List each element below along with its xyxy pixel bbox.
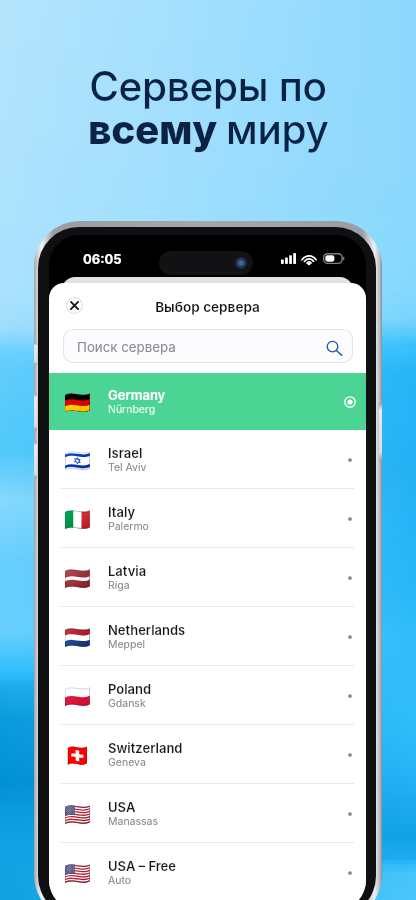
staticText: 🇱🇻: [64, 566, 91, 591]
staticText: USA: [108, 799, 136, 815]
staticText: 🇩🇪: [64, 390, 91, 415]
staticText: Israel: [108, 445, 143, 461]
button[interactable]: 🇨🇭: [49, 725, 366, 784]
staticText: Poland: [108, 681, 152, 697]
staticText: Italy: [108, 504, 136, 520]
staticText: Поиск сервера: [77, 339, 176, 355]
staticText: всему: [88, 105, 226, 154]
button[interactable]: 🇳🇱: [49, 607, 366, 666]
staticText: 06:05: [83, 251, 122, 267]
staticText: USA – Free: [108, 858, 176, 874]
button[interactable]: Close: [66, 297, 83, 314]
staticText: Серверы по: [0, 62, 416, 111]
staticText: 🇳🇱: [64, 625, 91, 650]
staticText: Auto: [108, 874, 132, 887]
staticText: Meppel: [108, 638, 146, 651]
button[interactable]: 🇺🇸: [49, 843, 366, 900]
button[interactable]: 🇵🇱: [49, 666, 366, 725]
staticText: 🇮🇹: [64, 507, 91, 532]
staticText: Latvia: [108, 563, 147, 579]
button[interactable]: 🇩🇪: [49, 373, 366, 430]
button[interactable]: 🇺🇸: [49, 784, 366, 843]
staticText: Nürnberg: [108, 403, 156, 416]
button[interactable]: Search server: [63, 329, 353, 363]
staticText: Gdansk: [108, 697, 146, 710]
staticText: Geneva: [108, 756, 146, 769]
staticText: 🇨🇭: [64, 743, 91, 768]
staticText: 🇺🇸: [64, 802, 91, 827]
button[interactable]: 🇱🇻: [49, 548, 366, 607]
staticText: 🇮🇱: [64, 448, 91, 473]
staticText: Tel Aviv: [108, 461, 147, 474]
staticText: Riga: [108, 579, 130, 592]
staticText: Manassas: [108, 815, 159, 828]
staticText: миру: [226, 105, 329, 154]
button[interactable]: 🇮🇹: [49, 489, 366, 548]
staticText: Germany: [108, 387, 166, 403]
staticText: Выбор сервера: [49, 299, 366, 315]
staticText: 🇵🇱: [64, 684, 91, 709]
staticText: Switzerland: [108, 740, 183, 756]
staticText: Netherlands: [108, 622, 186, 638]
button[interactable]: 🇮🇱: [49, 430, 366, 489]
staticText: 🇺🇸: [64, 861, 91, 886]
staticText: Palermo: [108, 520, 149, 533]
